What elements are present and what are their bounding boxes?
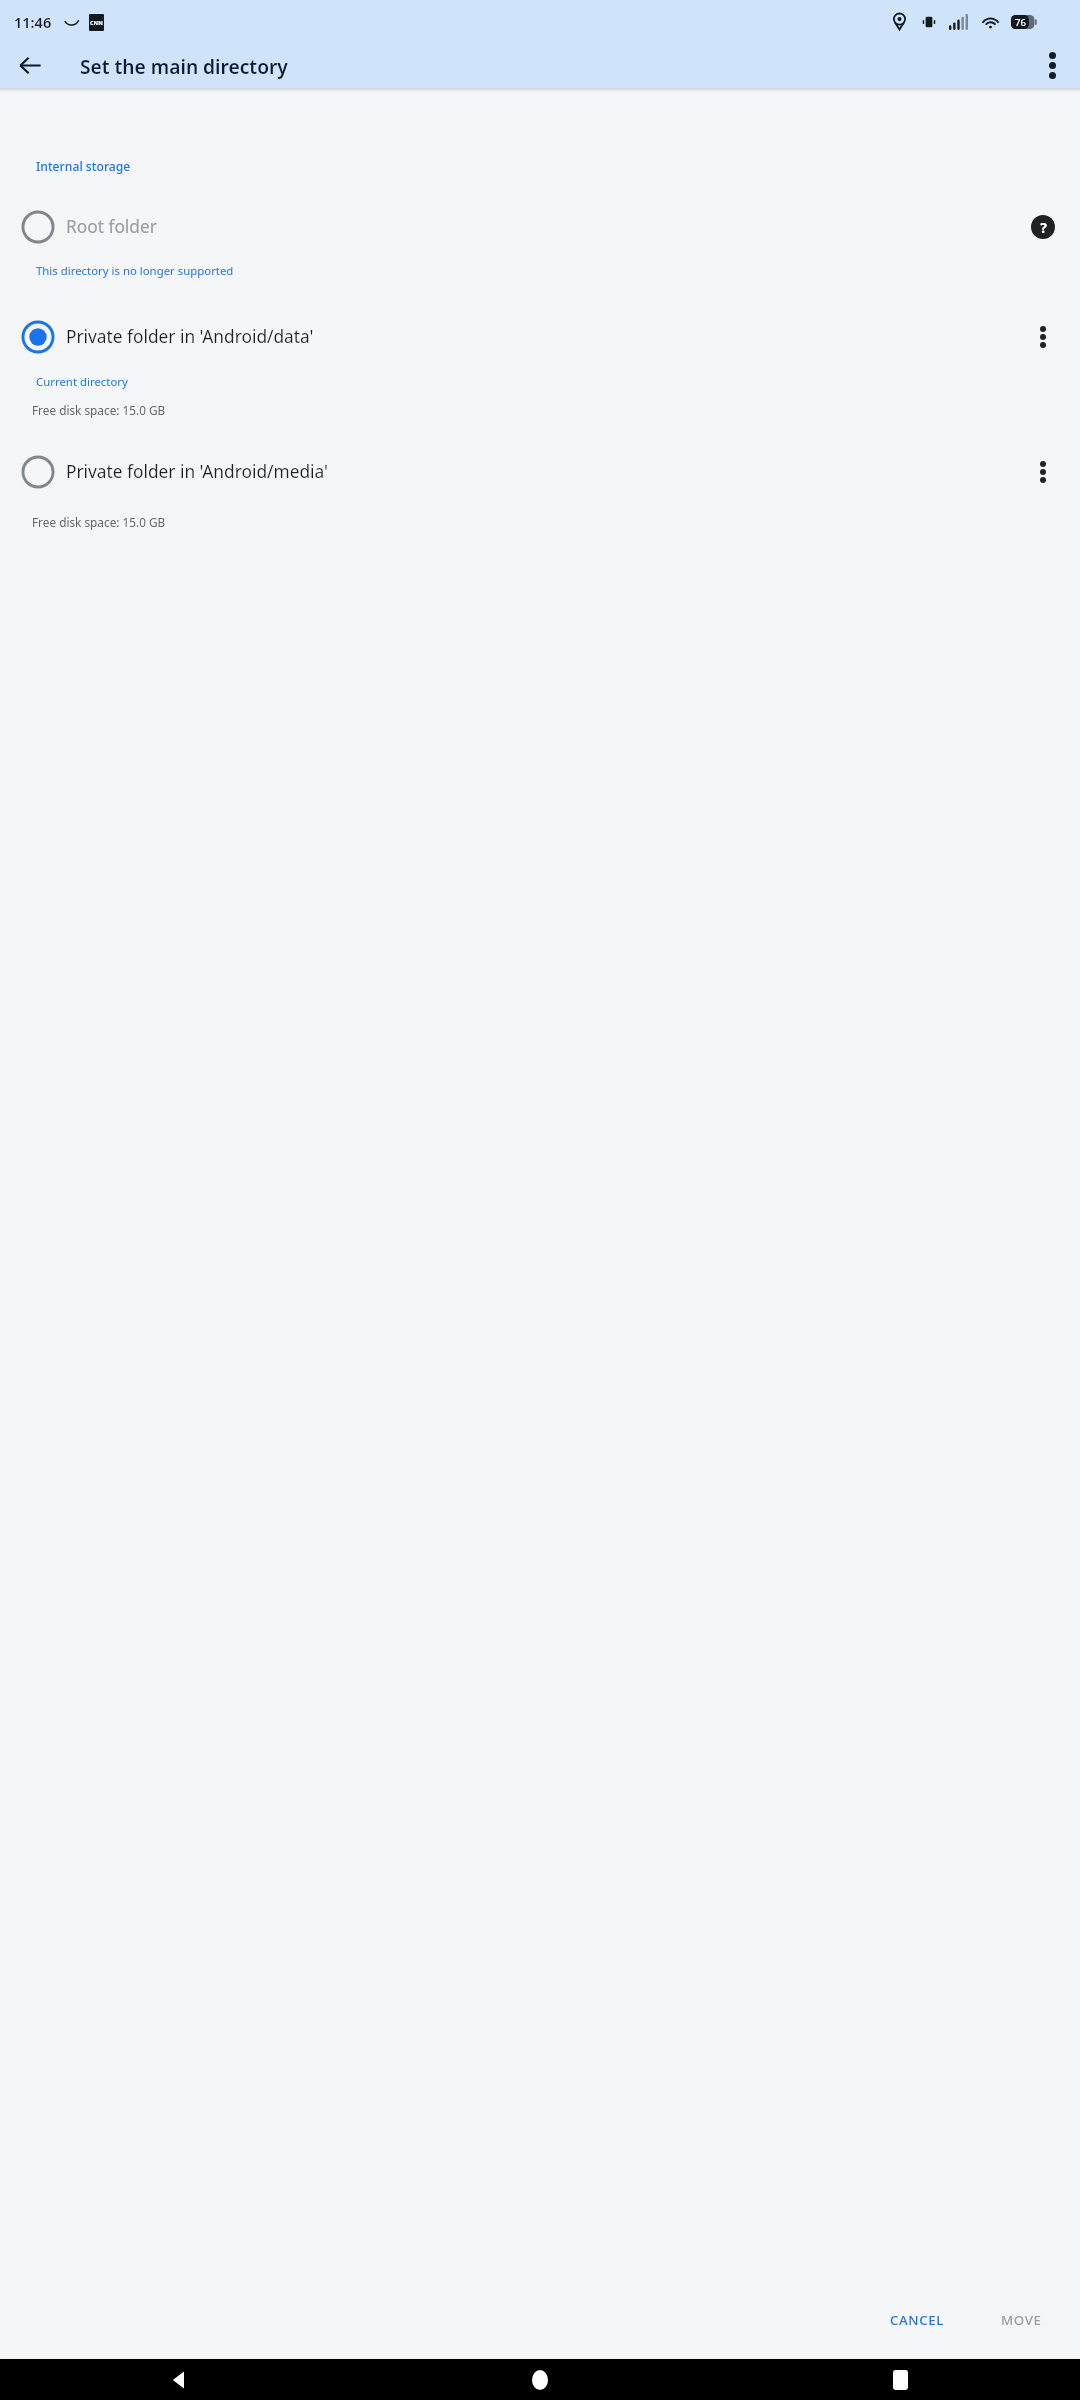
button[interactable]: Home — [360, 2359, 720, 2400]
staticText: Free disk space: 15.0 GB — [32, 402, 166, 418]
button[interactable]: MOVE — [987, 2303, 1056, 2337]
staticText: MOVE — [1001, 2311, 1042, 2329]
staticText: Root folder — [66, 215, 157, 239]
button[interactable]: Help — [1021, 205, 1065, 249]
staticText: Current directory — [36, 374, 128, 390]
staticText: Set the main directory — [80, 53, 288, 79]
staticText: Internal storage — [36, 158, 131, 175]
button[interactable]: CANCEL — [876, 2303, 959, 2337]
button[interactable]: Private folder in 'Android/data' — [0, 309, 1080, 365]
staticText: Private folder in 'Android/media' — [66, 460, 328, 484]
staticText: This directory is no longer supported — [36, 263, 234, 279]
staticText: Free disk space: 15.0 GB — [32, 514, 166, 530]
button[interactable]: More options — [1028, 43, 1076, 88]
button[interactable]: Back — [0, 2359, 360, 2400]
staticText: CNN — [90, 19, 103, 27]
button[interactable]: Back — [6, 43, 54, 88]
staticText: 11:46 — [14, 12, 52, 32]
button: Root folder — [0, 199, 1080, 255]
button[interactable]: Recent apps — [720, 2359, 1080, 2400]
staticText: 76 — [1015, 16, 1026, 29]
staticText: Private folder in 'Android/data' — [66, 325, 314, 349]
staticText: CANCEL — [890, 2311, 945, 2329]
button[interactable]: Private folder in 'Android/media' — [0, 444, 1080, 500]
button[interactable]: More options — [1021, 450, 1065, 494]
staticText: ? — [1040, 218, 1047, 237]
button[interactable]: More options — [1021, 315, 1065, 359]
